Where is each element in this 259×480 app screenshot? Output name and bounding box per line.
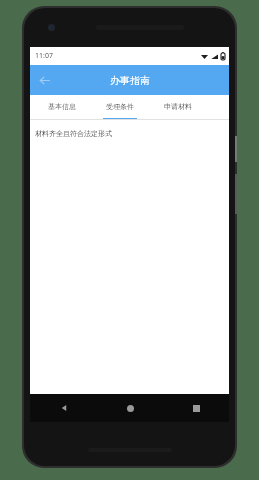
staticText: 申请材料 [164, 102, 192, 111]
button[interactable]: Home [97, 394, 163, 422]
staticText: 11:07 [35, 51, 53, 61]
button[interactable]: Back [30, 394, 97, 422]
button[interactable]: 申请材料 [149, 95, 207, 120]
staticText: 办事指南 [110, 74, 150, 87]
staticText: 受理条件 [106, 102, 134, 111]
staticText: 材料齐全且符合法定形式 [35, 129, 112, 138]
button[interactable]: 基本信息 [33, 95, 91, 120]
button[interactable]: Recents [163, 394, 229, 422]
staticText: 基本信息 [48, 102, 76, 111]
button[interactable]: 受理条件 [91, 95, 149, 120]
button[interactable]: 返回 [33, 69, 55, 91]
